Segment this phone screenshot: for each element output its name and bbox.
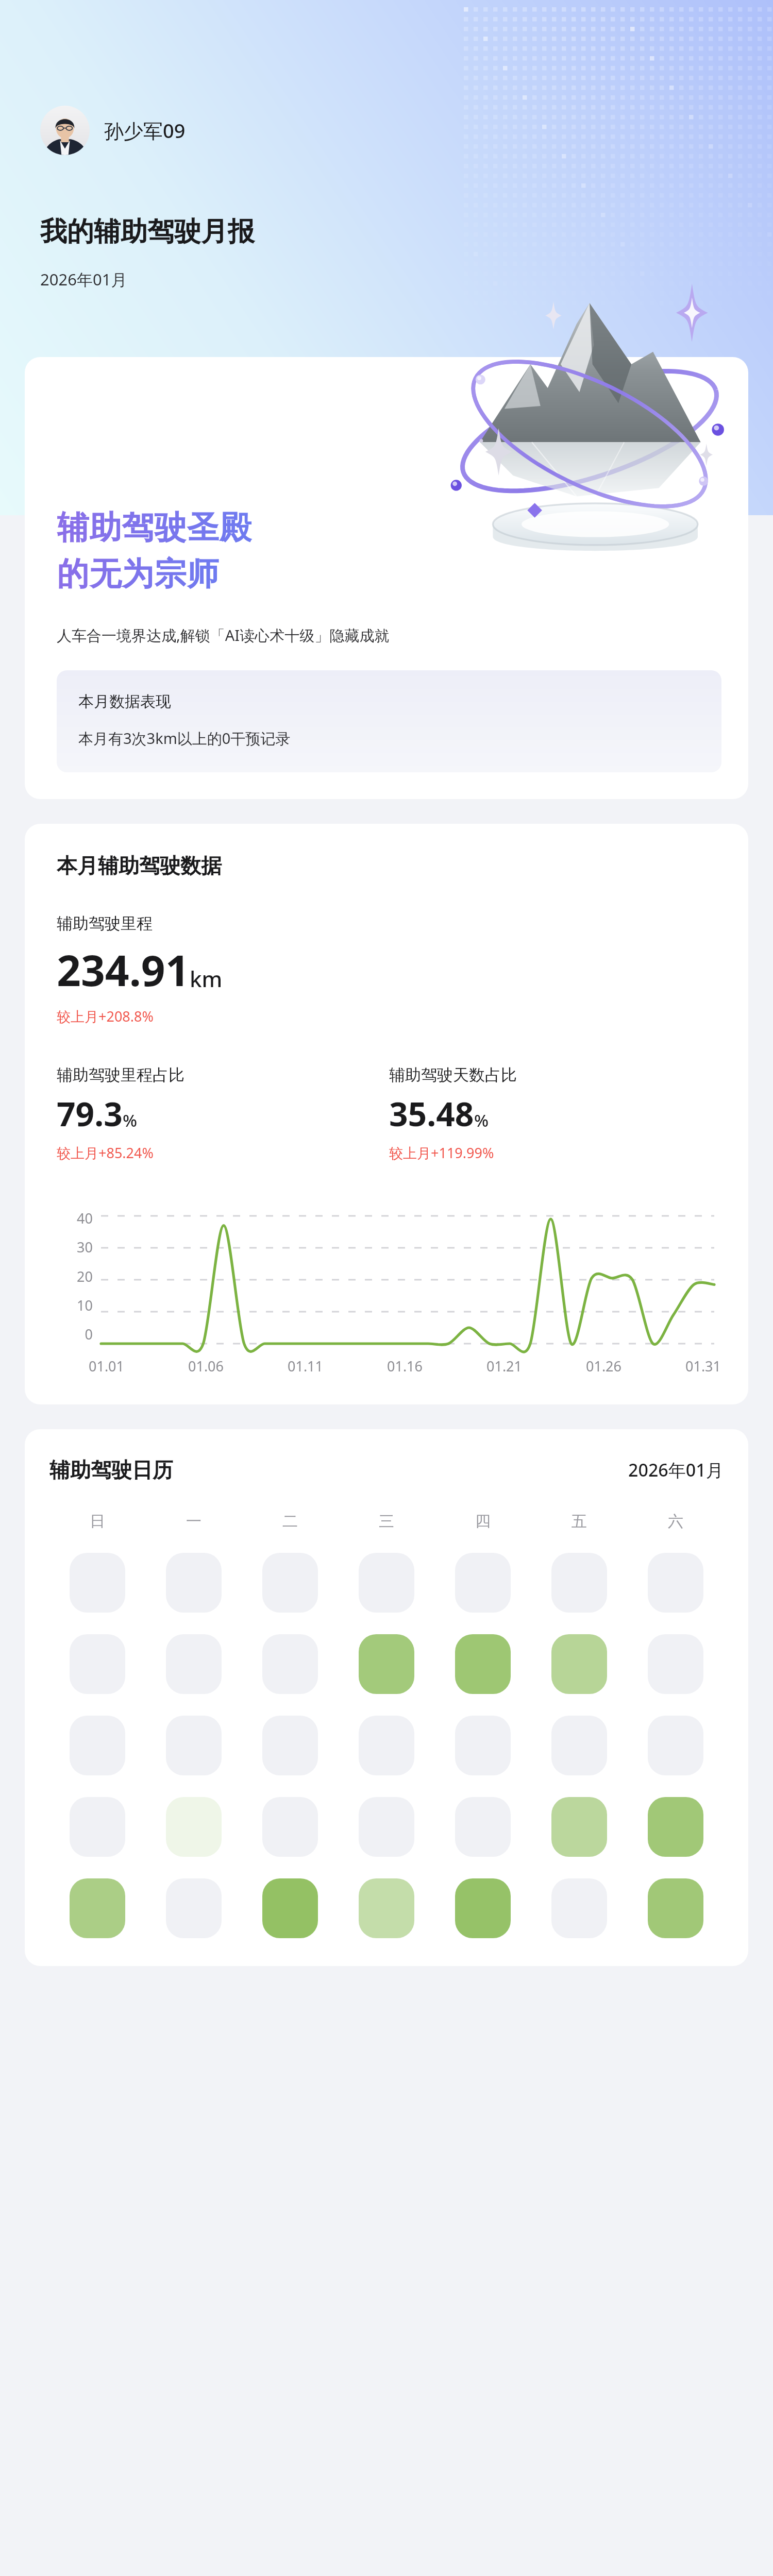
staticText: 30 (77, 1238, 93, 1257)
staticText: 本月有3次3km以上的0干预记录 (78, 728, 291, 749)
staticText: 20 (77, 1267, 93, 1286)
staticText: 01.16 (387, 1357, 423, 1376)
button[interactable] (359, 1716, 414, 1775)
staticText: 本月数据表现 (78, 692, 171, 711)
button[interactable] (648, 1634, 703, 1694)
staticText: 日 (90, 1512, 105, 1531)
button[interactable] (70, 1634, 125, 1694)
staticText: 01.06 (188, 1357, 224, 1376)
staticText: 79.3 (57, 1091, 123, 1136)
staticText: 2026年01月 (40, 268, 127, 290)
button[interactable] (262, 1634, 318, 1694)
staticText: 五 (572, 1512, 587, 1531)
staticText: 本月辅助驾驶数据 (57, 853, 222, 878)
button[interactable] (455, 1797, 511, 1857)
staticText: 35.48 (389, 1091, 474, 1136)
staticText: 四 (475, 1512, 491, 1531)
staticText: 40 (77, 1209, 93, 1228)
staticText: 三 (379, 1512, 394, 1531)
button[interactable] (359, 1797, 414, 1857)
button[interactable]: 本月辅助驾驶数据 (25, 824, 748, 1404)
staticText: 10 (77, 1296, 93, 1315)
button[interactable] (455, 1878, 511, 1938)
button[interactable] (648, 1553, 703, 1613)
button[interactable] (262, 1553, 318, 1613)
button[interactable] (648, 1797, 703, 1857)
staticText: 六 (668, 1512, 683, 1531)
staticText: 较上月+208.8% (57, 1007, 154, 1026)
button[interactable]: 辅助驾驶日历 (25, 1429, 748, 1966)
button[interactable] (70, 1716, 125, 1775)
button[interactable] (166, 1634, 222, 1694)
staticText: 辅助驾驶里程 (57, 913, 153, 934)
staticText: 的无为宗师 (57, 554, 219, 594)
staticText: 较上月+85.24% (57, 1143, 154, 1162)
button[interactable]: 本月数据表现 (57, 670, 721, 772)
button[interactable] (455, 1634, 511, 1694)
button[interactable] (551, 1634, 607, 1694)
staticText: 孙少军09 (104, 117, 186, 144)
button[interactable] (262, 1878, 318, 1938)
button[interactable] (25, 357, 748, 799)
button[interactable] (166, 1553, 222, 1613)
staticText: 一 (186, 1512, 201, 1531)
button[interactable]: 辅助驾驶里程占比 (57, 1065, 389, 1162)
staticText: % (474, 1109, 489, 1132)
staticText: 01.31 (685, 1357, 721, 1376)
button[interactable] (551, 1553, 607, 1613)
button[interactable] (359, 1553, 414, 1613)
button[interactable] (166, 1797, 222, 1857)
button[interactable] (455, 1553, 511, 1613)
staticText: 01.21 (486, 1357, 523, 1376)
button[interactable] (455, 1716, 511, 1775)
button[interactable] (648, 1716, 703, 1775)
button[interactable] (166, 1878, 222, 1938)
staticText: 01.01 (89, 1357, 125, 1376)
staticText: 2026年01月 (628, 1458, 724, 1482)
button[interactable] (551, 1878, 607, 1938)
staticText: 人车合一境界达成,解锁「AI读心术十级」隐藏成就 (57, 625, 390, 646)
staticText: km (190, 964, 223, 993)
button[interactable] (262, 1797, 318, 1857)
staticText: % (123, 1109, 138, 1132)
staticText: 01.26 (586, 1357, 622, 1376)
staticText: 较上月+119.99% (389, 1143, 494, 1162)
staticText: 辅助驾驶里程占比 (57, 1065, 184, 1085)
button[interactable] (648, 1878, 703, 1938)
staticText: 234.91 (57, 941, 190, 998)
button[interactable] (551, 1716, 607, 1775)
button[interactable] (551, 1797, 607, 1857)
button[interactable]: 孙少军09 (40, 106, 186, 155)
staticText: 0 (85, 1325, 93, 1344)
staticText: 辅助驾驶圣殿 (57, 507, 251, 548)
staticText: 我的辅助驾驶月报 (40, 215, 255, 249)
button[interactable] (70, 1878, 125, 1938)
staticText: 辅助驾驶日历 (49, 1457, 173, 1483)
button[interactable] (359, 1878, 414, 1938)
staticText: 01.11 (288, 1357, 324, 1376)
staticText: 二 (282, 1512, 298, 1531)
button[interactable]: 辅助驾驶天数占比 (389, 1065, 721, 1162)
button[interactable] (262, 1716, 318, 1775)
staticText: 辅助驾驶天数占比 (389, 1065, 517, 1085)
button[interactable] (70, 1553, 125, 1613)
button[interactable] (70, 1797, 125, 1857)
button[interactable] (166, 1716, 222, 1775)
button[interactable] (359, 1634, 414, 1694)
